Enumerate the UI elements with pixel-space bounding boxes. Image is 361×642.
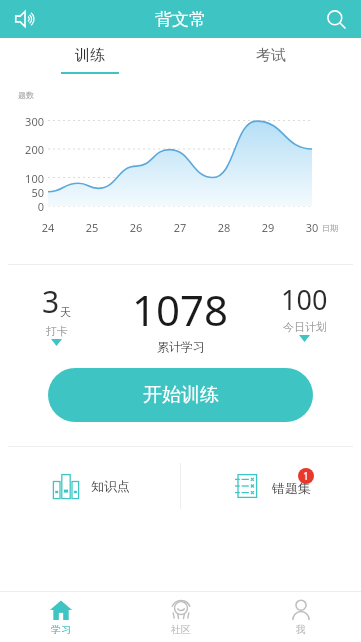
button[interactable]: 错题集	[181, 447, 361, 525]
staticText: 1	[303, 469, 309, 483]
staticText: 我	[296, 623, 306, 636]
button[interactable]: 学习	[0, 592, 121, 642]
staticText: 26	[125, 220, 147, 235]
staticText: 100	[16, 171, 44, 186]
staticText: 29	[257, 220, 279, 235]
staticText: 0	[16, 199, 44, 214]
staticText: 3	[42, 281, 60, 322]
staticText: 1078	[132, 281, 229, 338]
staticText: 天	[60, 305, 71, 319]
button[interactable]: 我	[241, 592, 361, 642]
button[interactable]: 知识点	[0, 447, 180, 525]
staticText: 学习	[51, 623, 71, 636]
staticText: 日期	[322, 223, 338, 233]
staticText: 24	[37, 220, 59, 235]
staticText: 300	[16, 114, 44, 129]
staticText: 28	[213, 220, 235, 235]
button[interactable]: 训练	[0, 38, 180, 82]
staticText: 累计学习	[157, 339, 205, 354]
staticText: 100	[281, 281, 328, 318]
button[interactable]: 开始训练	[48, 368, 313, 422]
staticText: 今日计划	[283, 320, 327, 334]
staticText: 开始训练	[143, 383, 219, 407]
staticText: 30	[301, 220, 323, 235]
staticText: 知识点	[91, 478, 130, 494]
staticText: 训练	[75, 46, 105, 65]
staticText: 200	[16, 142, 44, 157]
button[interactable]: Search	[317, 0, 355, 38]
staticText: 题数	[18, 90, 34, 100]
button[interactable]: 考试	[180, 38, 361, 82]
staticText: 背文常	[155, 9, 206, 30]
staticText: 25	[81, 220, 103, 235]
staticText: 考试	[256, 46, 286, 65]
staticText: 27	[169, 220, 191, 235]
button[interactable]: 社区	[121, 592, 241, 642]
button[interactable]: Sound	[6, 0, 44, 38]
staticText: 50	[16, 185, 44, 200]
staticText: 打卡	[46, 324, 68, 338]
staticText: 社区	[171, 623, 191, 636]
staticText: 错题集	[272, 480, 311, 496]
